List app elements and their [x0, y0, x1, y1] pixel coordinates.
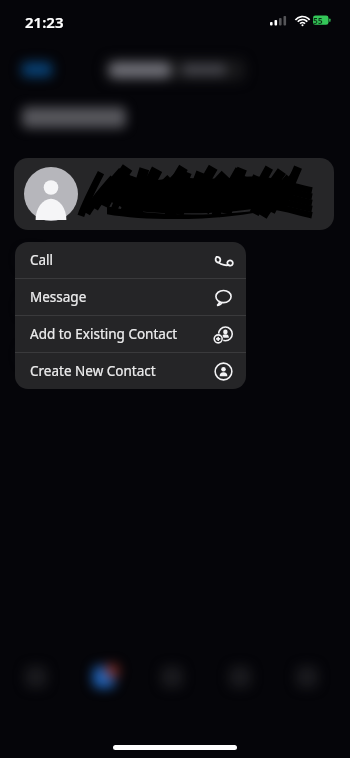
- staticText: 55: [313, 15, 323, 27]
- button[interactable]: +: [14, 158, 334, 230]
- staticText: +: [98, 186, 107, 206]
- staticText: 21:23: [25, 12, 64, 32]
- staticText: Call: [30, 251, 54, 269]
- button[interactable]: Add to Existing Contact: [15, 316, 246, 352]
- staticText: Message: [30, 288, 87, 306]
- staticText: Add to Existing Contact: [30, 325, 178, 343]
- staticText: Create New Contact: [30, 362, 156, 380]
- button[interactable]: Message: [15, 279, 246, 315]
- button[interactable]: Create New Contact: [15, 353, 246, 389]
- button[interactable]: Call: [15, 242, 246, 278]
